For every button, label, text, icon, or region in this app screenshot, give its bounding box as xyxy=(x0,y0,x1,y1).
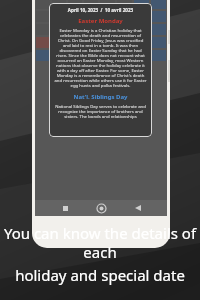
button[interactable]: Recent apps xyxy=(58,201,72,215)
staticText: Easter Monday xyxy=(54,17,147,25)
button[interactable]: Back xyxy=(131,201,145,215)
button[interactable]: Home xyxy=(94,201,108,215)
staticText: National Siblings Day serves to celebrat… xyxy=(54,103,147,119)
staticText: April 10, 2023 / 10 avril 2023 xyxy=(54,7,147,13)
staticText: Nat'l. Siblings Day xyxy=(54,93,147,101)
staticText: holiday and special date xyxy=(0,265,200,285)
staticText: Easter Monday is a Christian holiday tha… xyxy=(54,27,147,88)
staticText: You can know the details of each xyxy=(0,223,200,262)
button[interactable]: April 10, 2023 / 10 avril 2023 xyxy=(49,3,152,137)
